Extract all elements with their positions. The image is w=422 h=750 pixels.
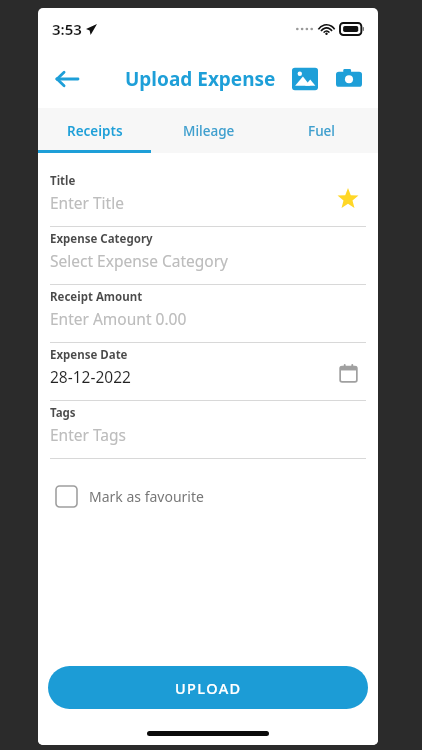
staticText: Tags (50, 405, 76, 421)
button[interactable]: Take photo with camera (329, 59, 369, 99)
staticText: Mark as favourite (89, 487, 204, 506)
button[interactable]: UPLOAD (48, 666, 368, 709)
button[interactable]: Fuel (265, 108, 378, 153)
button[interactable]: Title (332, 183, 364, 215)
button[interactable]: Pick image from gallery (285, 59, 325, 99)
staticText: Expense Date (50, 347, 128, 363)
button[interactable]: Expense Date (332, 357, 364, 389)
staticText: 28-12-2022 (50, 366, 131, 387)
staticText: Expense Category (50, 231, 153, 247)
staticText: Receipts (67, 122, 123, 140)
button[interactable]: Mileage (152, 108, 265, 153)
staticText: 3:53 (52, 19, 82, 39)
staticText: Mileage (183, 122, 235, 140)
staticText: UPLOAD (175, 678, 242, 698)
button[interactable]: Receipts (38, 108, 152, 153)
staticText: Upload Expense (125, 66, 276, 92)
staticText: Enter Amount 0.00 (50, 308, 187, 329)
staticText: Enter Title (50, 192, 124, 213)
staticText: Receipt Amount (50, 289, 143, 305)
button[interactable]: Back (46, 59, 86, 99)
button[interactable]: Mark as favourite (56, 486, 204, 507)
staticText: Fuel (308, 122, 335, 140)
staticText: Select Expense Category (50, 250, 228, 271)
staticText: Enter Tags (50, 424, 126, 445)
staticText: Title (50, 173, 76, 189)
